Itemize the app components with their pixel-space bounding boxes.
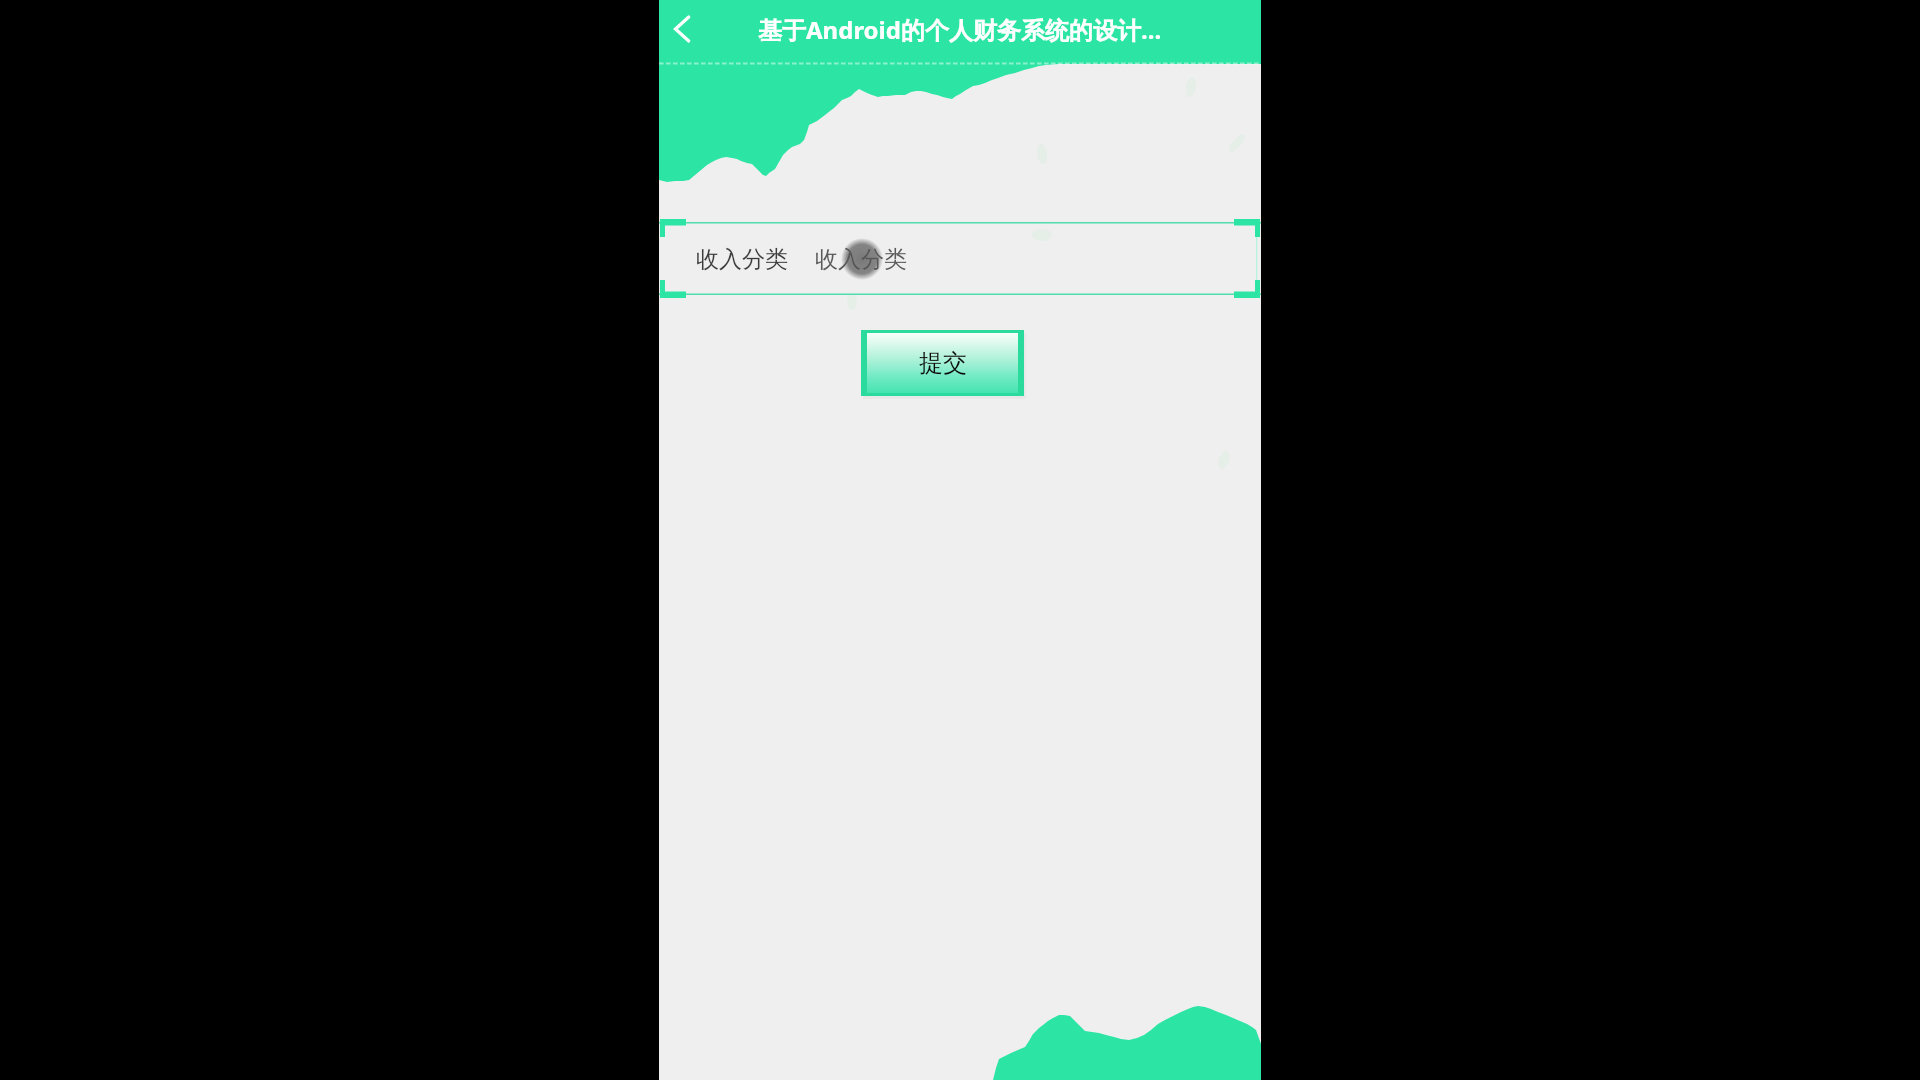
- button[interactable]: 提交: [867, 333, 1018, 393]
- button[interactable]: Back: [659, 0, 707, 64]
- staticText: 收入分类: [696, 245, 788, 274]
- staticText: 提交: [919, 348, 967, 378]
- staticText: 基于Android的个人财务系统的设计...: [758, 13, 1162, 46]
- staticText: 收入分类: [815, 245, 907, 274]
- button[interactable]: 收入分类: [659, 222, 1261, 295]
